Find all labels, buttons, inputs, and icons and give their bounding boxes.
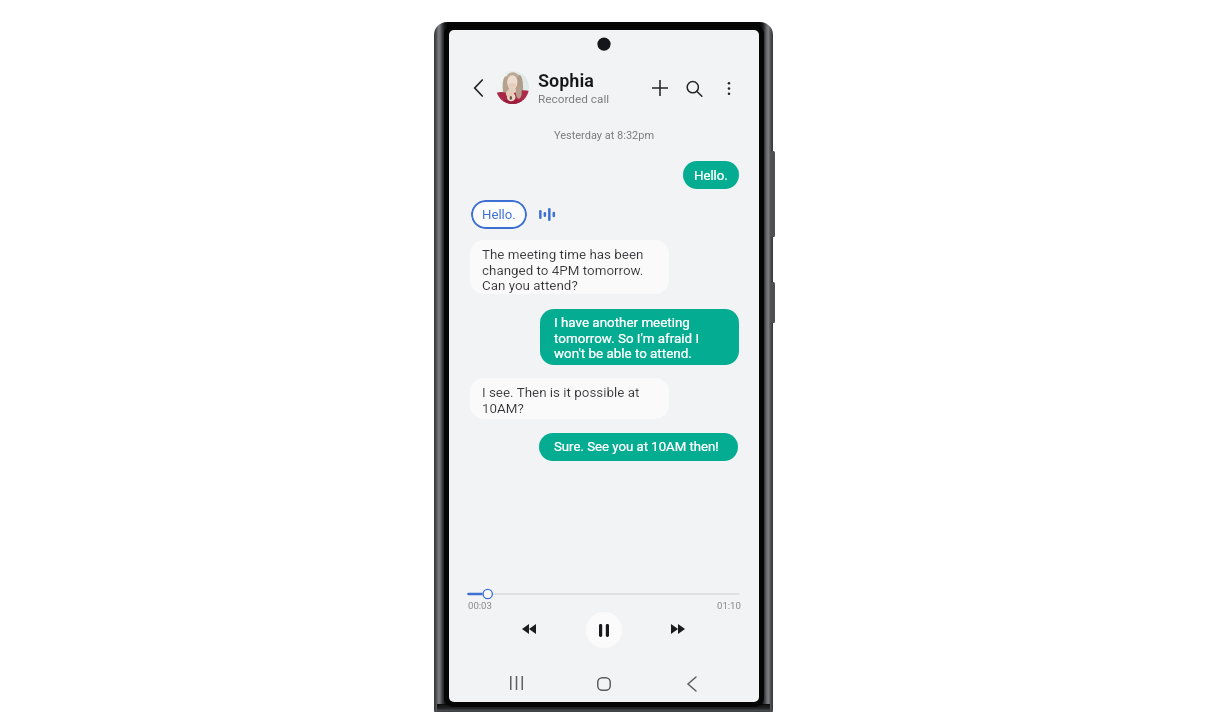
button[interactable]: Play voice message: [535, 204, 559, 224]
button[interactable]: Add: [649, 77, 670, 98]
staticText: Recorded call: [538, 92, 610, 106]
staticText: Hello.: [482, 207, 516, 222]
staticText: I have another meeting tomorrow. So I'm …: [554, 315, 700, 361]
button[interactable]: The meeting time has been changed to 4PM…: [470, 240, 669, 294]
button[interactable]: Hello.: [471, 200, 527, 229]
staticText: Sure. See you at 10AM then!: [554, 439, 719, 454]
button[interactable]: Fast forward: [662, 613, 694, 645]
button[interactable]: Sure. See you at 10AM then!: [539, 433, 738, 461]
staticText: 00:03: [468, 600, 492, 611]
staticText: Hello.: [694, 168, 728, 183]
staticText: 01:10: [717, 600, 741, 611]
button[interactable]: I see. Then is it possible at 10AM?: [470, 378, 669, 419]
staticText: Sophia: [538, 70, 594, 91]
button[interactable]: Back: [468, 78, 488, 98]
button[interactable]: Recent apps: [500, 667, 532, 699]
button[interactable]: I have another meeting tomorrow. So I'm …: [540, 309, 739, 365]
button[interactable]: Back: [676, 668, 708, 700]
button[interactable]: More options: [718, 78, 739, 99]
button[interactable]: Pause: [586, 612, 622, 648]
button[interactable]: Hello.: [683, 161, 739, 189]
staticText: The meeting time has been changed to 4PM…: [482, 247, 644, 293]
button[interactable]: Search: [684, 79, 705, 100]
staticText: I see. Then is it possible at 10AM?: [482, 385, 640, 416]
button[interactable]: Home: [588, 668, 620, 700]
staticText: Yesterday at 8:32pm: [449, 129, 759, 142]
button[interactable]: Rewind: [513, 613, 545, 645]
